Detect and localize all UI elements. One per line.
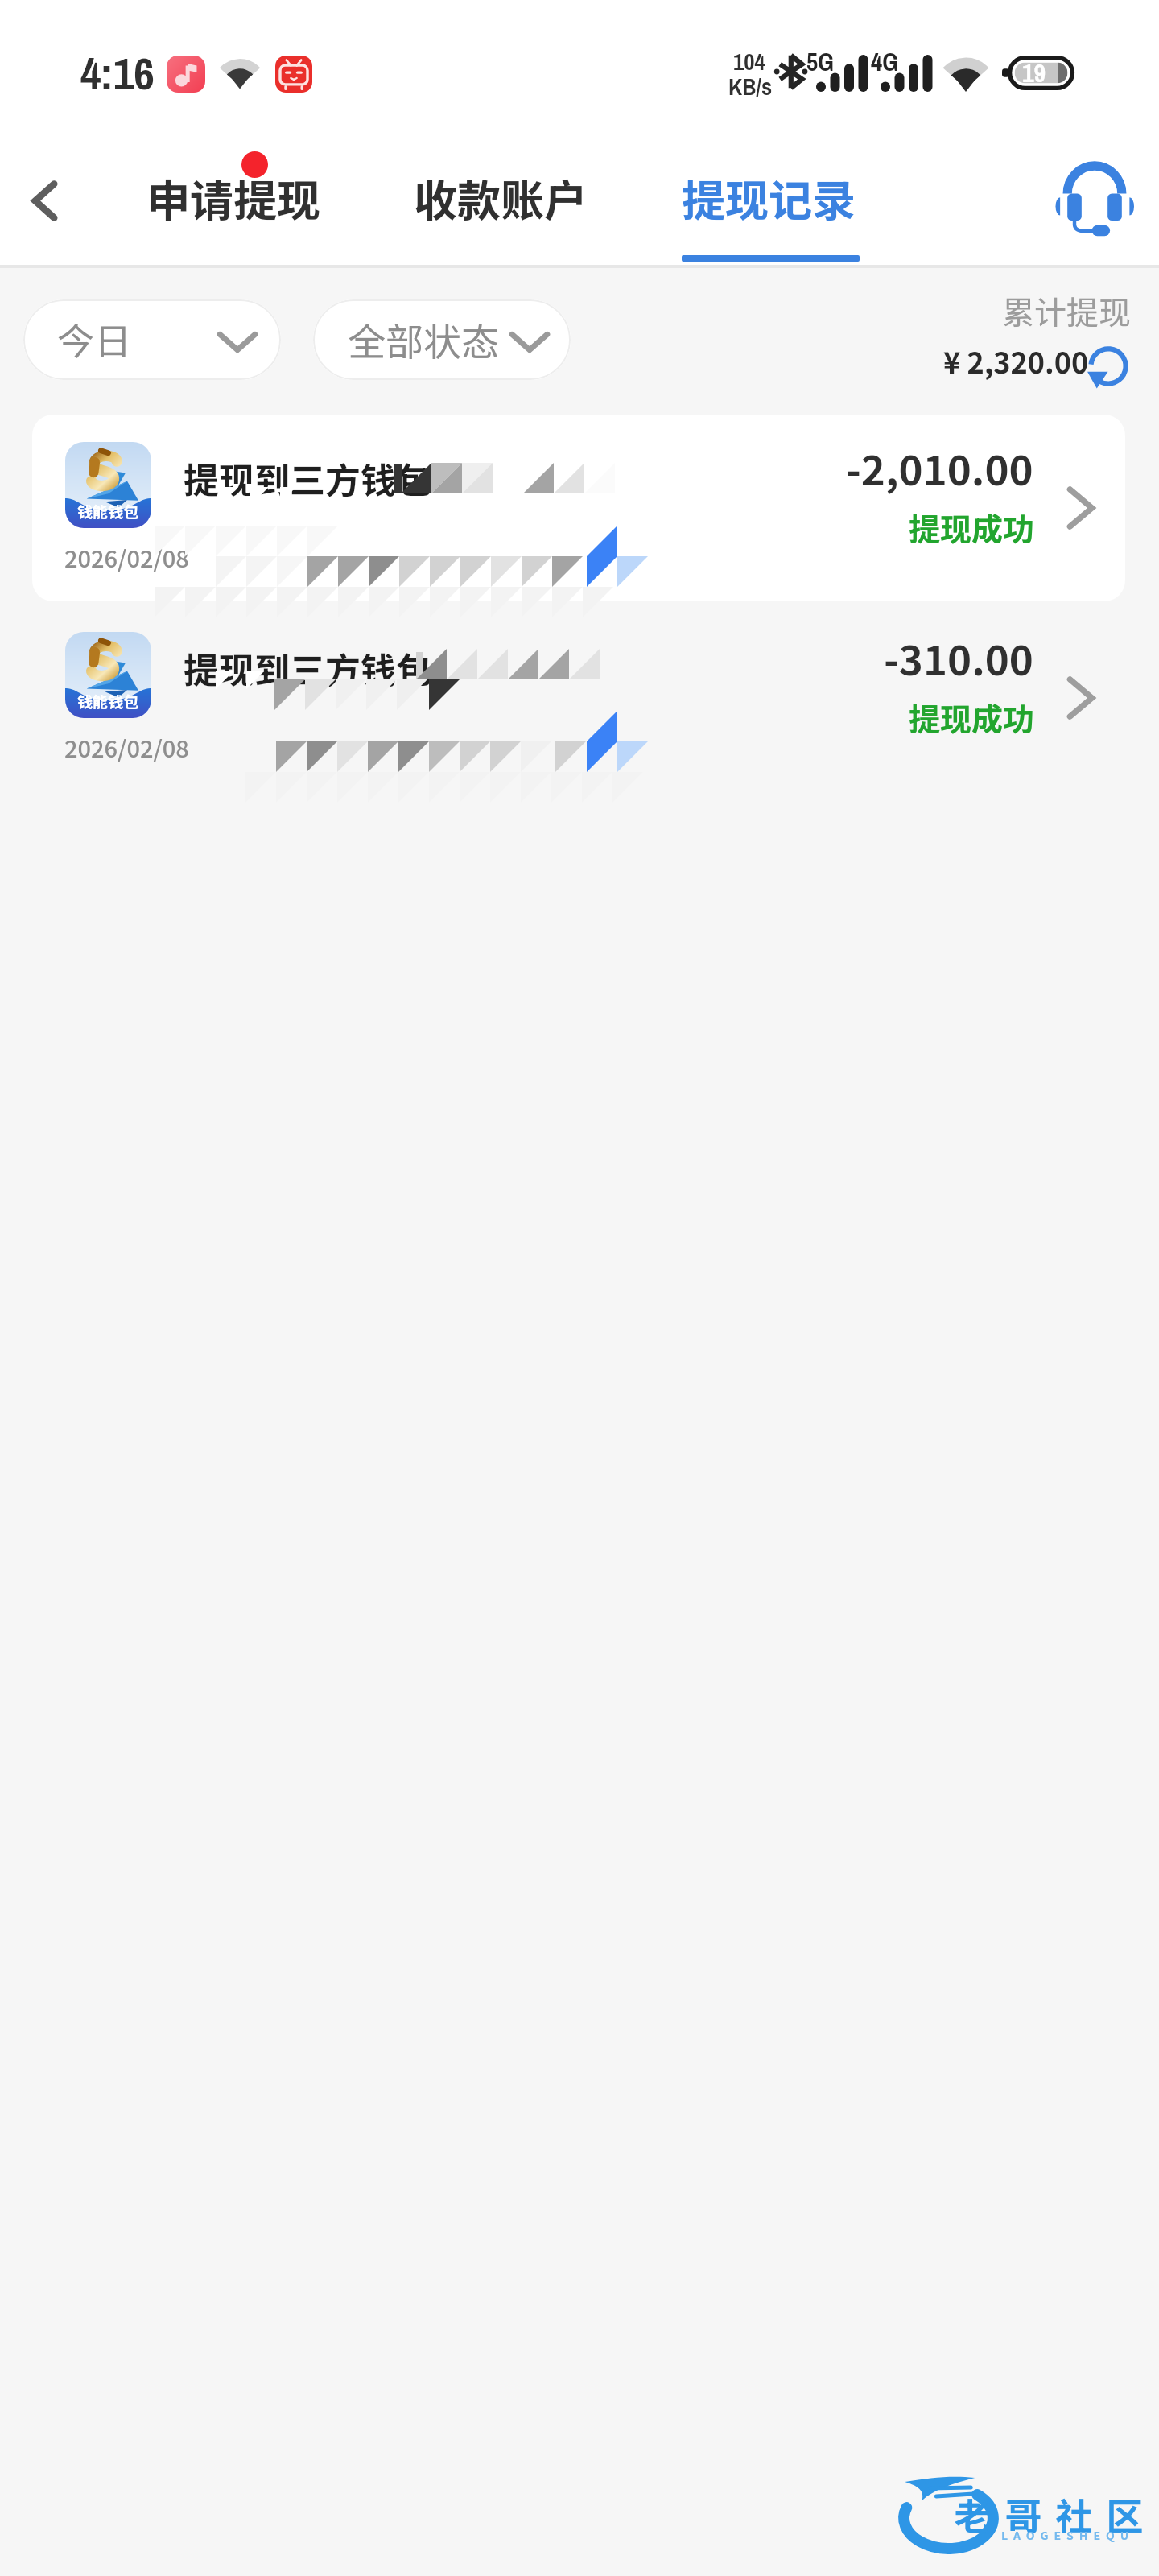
staticText: 钱能钱包: [77, 500, 139, 522]
staticText: KB/s: [728, 71, 773, 102]
staticText: 收款账户: [414, 166, 588, 229]
staticText: 2026/02/08: [64, 540, 189, 574]
staticText: 2026/02/08: [64, 730, 189, 764]
staticText: 今日: [57, 312, 131, 366]
staticText: 提现成功: [909, 695, 1035, 740]
staticText: 4:16: [80, 43, 155, 103]
button[interactable]: Back: [0, 137, 89, 264]
button[interactable]: 钱能钱包: [0, 605, 1159, 791]
button[interactable]: 提现记录: [667, 145, 870, 265]
button[interactable]: 今日: [23, 299, 281, 380]
staticText: 提现到三方钱包: [184, 452, 431, 504]
staticText: -2,010.00: [846, 438, 1033, 497]
staticText: LAOGESHEQU: [1001, 2527, 1135, 2543]
staticText: 5G: [806, 45, 834, 79]
staticText: 老哥社区: [947, 2487, 1150, 2541]
staticText: 4G: [871, 45, 898, 79]
staticText: 申请提现: [146, 166, 320, 229]
button[interactable]: 全部状态: [313, 299, 571, 380]
staticText: 104: [733, 46, 765, 77]
staticText: 钱能钱包: [77, 690, 139, 712]
button[interactable]: Customer service: [1038, 133, 1151, 265]
staticText: 19: [1022, 56, 1046, 90]
staticText: 累计提现: [1002, 287, 1131, 334]
staticText: 提现成功: [909, 505, 1035, 550]
staticText: ¥ 2,320.00: [943, 340, 1089, 382]
button[interactable]: 申请提现: [132, 145, 330, 265]
button[interactable]: 收款账户: [399, 145, 602, 265]
button[interactable]: 钱能钱包: [0, 415, 1159, 601]
staticText: 提现到三方钱包: [184, 642, 431, 694]
button[interactable]: Refresh: [1083, 341, 1134, 393]
staticText: 全部状态: [348, 312, 499, 366]
staticText: -310.00: [884, 628, 1033, 687]
staticText: 提现记录: [682, 166, 856, 229]
